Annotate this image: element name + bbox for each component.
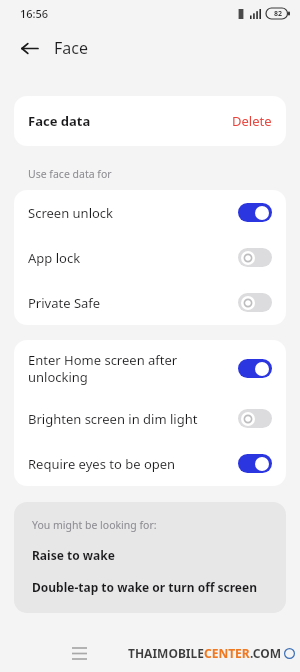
button[interactable]: Recents xyxy=(64,638,94,668)
staticText: You might be looking for: xyxy=(32,518,157,532)
staticText: App lock xyxy=(28,249,226,267)
button[interactable]: Screen unlock xyxy=(14,190,286,235)
staticText: Enter Home screen after unlocking xyxy=(28,351,226,386)
button[interactable]: Require eyes to be open xyxy=(14,441,286,486)
staticText: Double-tap to wake or turn off screen xyxy=(32,579,257,595)
button[interactable]: Enter Home screen after unlocking xyxy=(14,340,286,396)
staticText: Face xyxy=(54,37,88,59)
staticText: Delete xyxy=(232,112,272,130)
staticText: 16:56 xyxy=(20,6,49,21)
button[interactable]: Brighten screen in dim light xyxy=(14,396,286,441)
button[interactable]: Enabled xyxy=(238,454,272,473)
button[interactable]: Face data xyxy=(14,96,286,146)
staticText: CENTER xyxy=(204,645,250,661)
button[interactable]: Enabled xyxy=(238,359,272,378)
button[interactable]: Back xyxy=(16,35,42,61)
button[interactable]: Raise to wake xyxy=(14,532,286,563)
button[interactable]: Double-tap to wake or turn off screen xyxy=(14,563,286,613)
staticText: Face data xyxy=(28,112,232,130)
button[interactable]: Enabled xyxy=(238,203,272,222)
button[interactable]: Private Safe xyxy=(14,280,286,325)
staticText: Require eyes to be open xyxy=(28,455,226,473)
staticText: Private Safe xyxy=(28,294,226,312)
button[interactable]: Disabled xyxy=(238,409,272,428)
staticText: Use face data for xyxy=(28,167,112,181)
button[interactable]: App lock xyxy=(14,235,286,280)
staticText: .COM xyxy=(250,645,282,661)
staticText: Brighten screen in dim light xyxy=(28,410,226,428)
button[interactable]: Disabled xyxy=(238,293,272,312)
button[interactable]: Disabled xyxy=(238,248,272,267)
staticText: THAIMOBILE xyxy=(128,645,204,661)
staticText: Screen unlock xyxy=(28,204,226,222)
staticText: 82 xyxy=(274,9,283,19)
staticText: Raise to wake xyxy=(32,547,115,563)
